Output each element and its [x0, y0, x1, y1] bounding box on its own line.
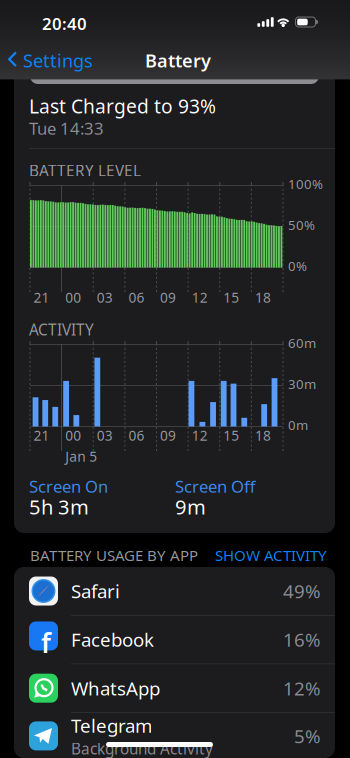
staticText: 06 [128, 426, 144, 445]
staticText: 49% [283, 578, 321, 604]
staticText: 60m [288, 334, 316, 352]
staticText: 00 [65, 426, 81, 445]
staticText: 15 [223, 288, 239, 307]
staticText: 03 [97, 288, 113, 307]
staticText: 5% [294, 723, 321, 749]
staticText: 06 [128, 288, 144, 307]
staticText: 15 [223, 426, 239, 445]
staticText: 09 [160, 288, 176, 307]
staticText: Telegram [71, 713, 152, 738]
staticText: 0% [288, 257, 307, 275]
staticText: BATTERY USAGE BY APP [30, 545, 198, 565]
button[interactable]: Safari [14, 567, 335, 616]
staticText: 21 [34, 288, 50, 307]
staticText: 0m [288, 416, 308, 434]
staticText: Battery [145, 48, 211, 73]
staticText: SHOW ACTIVITY [215, 545, 327, 565]
staticText: f [41, 624, 51, 661]
staticText: WhatsApp [71, 675, 160, 701]
staticText: 50% [288, 216, 315, 234]
staticText: Jan 5 [65, 447, 97, 466]
button[interactable]: Telegram [14, 713, 335, 758]
staticText: Tue 14:33 [29, 117, 104, 140]
staticText: ACTIVITY [29, 319, 94, 340]
staticText: Settings [23, 48, 93, 73]
staticText: Screen On [29, 475, 108, 498]
staticText: 12 [192, 288, 208, 307]
button[interactable]: SHOW ACTIVITY [215, 543, 327, 567]
staticText: 00 [65, 288, 81, 307]
staticText: 09 [160, 426, 176, 445]
staticText: 18 [255, 426, 271, 445]
staticText: 12% [283, 675, 321, 701]
staticText: 5h 3m [29, 493, 89, 520]
button[interactable]: WhatsApp [14, 664, 335, 713]
staticText: Background Activity [71, 738, 213, 758]
staticText: 30m [288, 375, 316, 393]
button[interactable]: f [14, 616, 335, 664]
staticText: Last Charged to 93% [29, 93, 216, 119]
staticText: Screen Off [175, 475, 255, 498]
staticText: 100% [288, 175, 323, 193]
staticText: 18 [255, 288, 271, 307]
staticText: 03 [97, 426, 113, 445]
button[interactable]: Settings [0, 40, 100, 78]
staticText: Facebook [71, 627, 154, 652]
staticText: 12 [192, 426, 208, 445]
staticText: 20:40 [42, 12, 87, 35]
staticText: BATTERY LEVEL [29, 160, 141, 181]
staticText: 21 [34, 426, 50, 445]
staticText: Safari [71, 578, 120, 604]
staticText: 16% [283, 627, 321, 652]
staticText: 9m [175, 493, 206, 520]
